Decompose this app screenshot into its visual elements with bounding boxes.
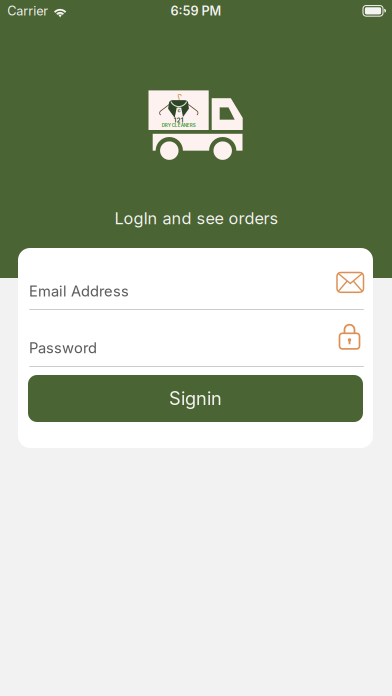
button[interactable]: Signin [28, 375, 363, 422]
staticText: Signin [169, 387, 222, 409]
staticText: Carrier [7, 3, 48, 18]
staticText: Password [29, 339, 97, 357]
button[interactable]: Email Address [29, 268, 364, 310]
staticText: LogIn and see orders [114, 208, 278, 228]
button[interactable]: Password [29, 326, 364, 367]
staticText: 6:59 PM [170, 3, 221, 18]
staticText: c [177, 107, 180, 114]
staticText: DRY CLEANERS [162, 123, 196, 128]
staticText: 121 [174, 117, 184, 124]
staticText: Email Address [29, 282, 129, 300]
